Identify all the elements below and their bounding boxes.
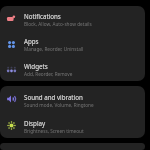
staticText: Brightness, Screen timeout [24, 128, 84, 134]
button[interactable]: Sound and vibration [0, 86, 145, 112]
staticText: Add, Reorder, Remove [24, 71, 73, 77]
staticText: Block, Allow, Auto-show details [24, 21, 92, 27]
staticText: Sound mode, Volume, Ringtone [24, 102, 94, 108]
staticText: Sound and vibration [24, 93, 83, 101]
staticText: Notifications [24, 12, 61, 20]
staticText: Apps [24, 37, 39, 45]
staticText: Display [24, 119, 46, 127]
button[interactable]: Apps [0, 31, 145, 56]
button[interactable]: Widgets [0, 56, 145, 81]
button[interactable]: Notifications [0, 6, 145, 31]
staticText: Manage, Reorder, Uninstall [24, 46, 84, 52]
staticText: Widgets [24, 62, 48, 70]
button[interactable]: Display [0, 112, 145, 138]
